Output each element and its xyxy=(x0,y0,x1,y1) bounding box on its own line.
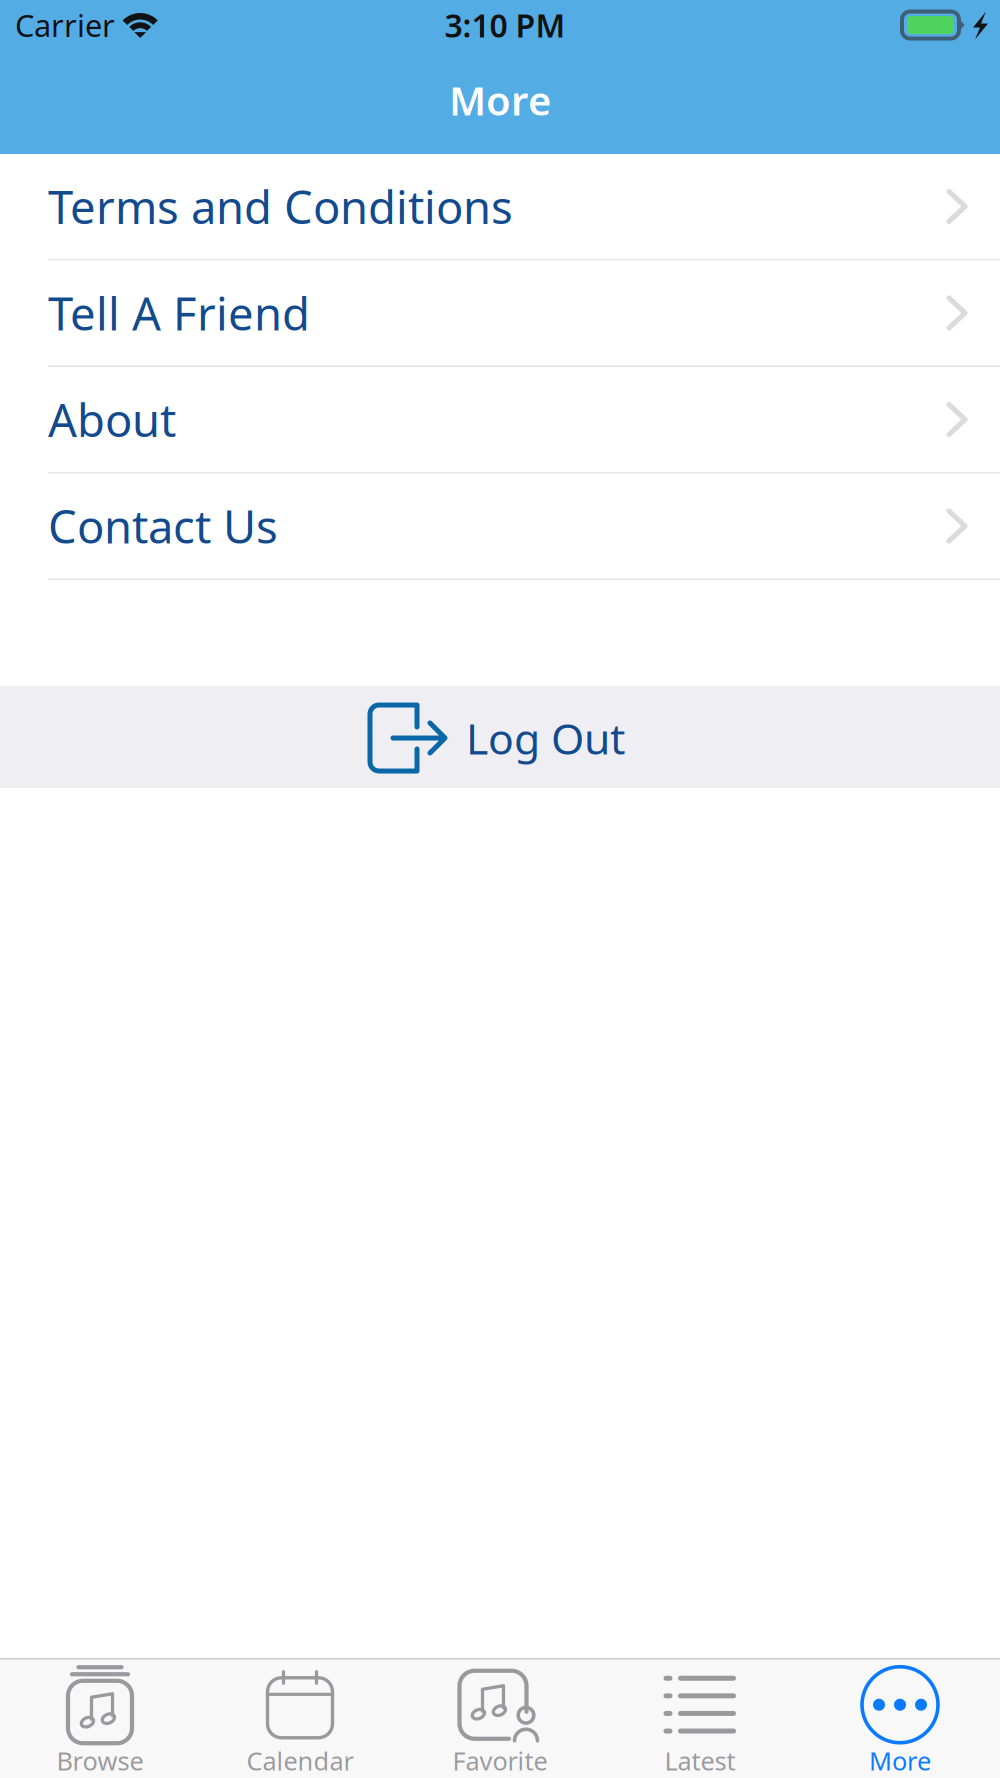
button[interactable]: Contact Us xyxy=(0,473,1000,580)
button[interactable]: About xyxy=(0,367,1000,473)
staticText: Carrier xyxy=(15,5,115,45)
staticText: Contact Us xyxy=(48,496,278,556)
staticText: Tell A Friend xyxy=(48,283,310,343)
staticText: Browse xyxy=(56,1744,143,1777)
staticText: About xyxy=(48,389,176,450)
button[interactable]: Calendar xyxy=(200,1659,400,1778)
button[interactable]: Terms and Conditions xyxy=(0,154,1000,260)
staticText: Latest xyxy=(664,1744,735,1777)
staticText: Log Out xyxy=(466,710,625,766)
button[interactable]: Favorite xyxy=(400,1659,600,1778)
staticText: 3:10 PM xyxy=(444,4,565,46)
staticText: Calendar xyxy=(246,1744,353,1777)
staticText: Terms and Conditions xyxy=(48,176,513,237)
button[interactable]: Tell A Friend xyxy=(0,260,1000,367)
button[interactable]: More xyxy=(800,1659,1000,1778)
staticText: More xyxy=(449,73,551,126)
button[interactable]: Log Out xyxy=(0,686,1000,788)
staticText: More xyxy=(869,1744,931,1777)
button[interactable]: Latest xyxy=(600,1659,800,1778)
staticText: Favorite xyxy=(452,1744,547,1777)
button[interactable]: Browse xyxy=(0,1659,200,1778)
